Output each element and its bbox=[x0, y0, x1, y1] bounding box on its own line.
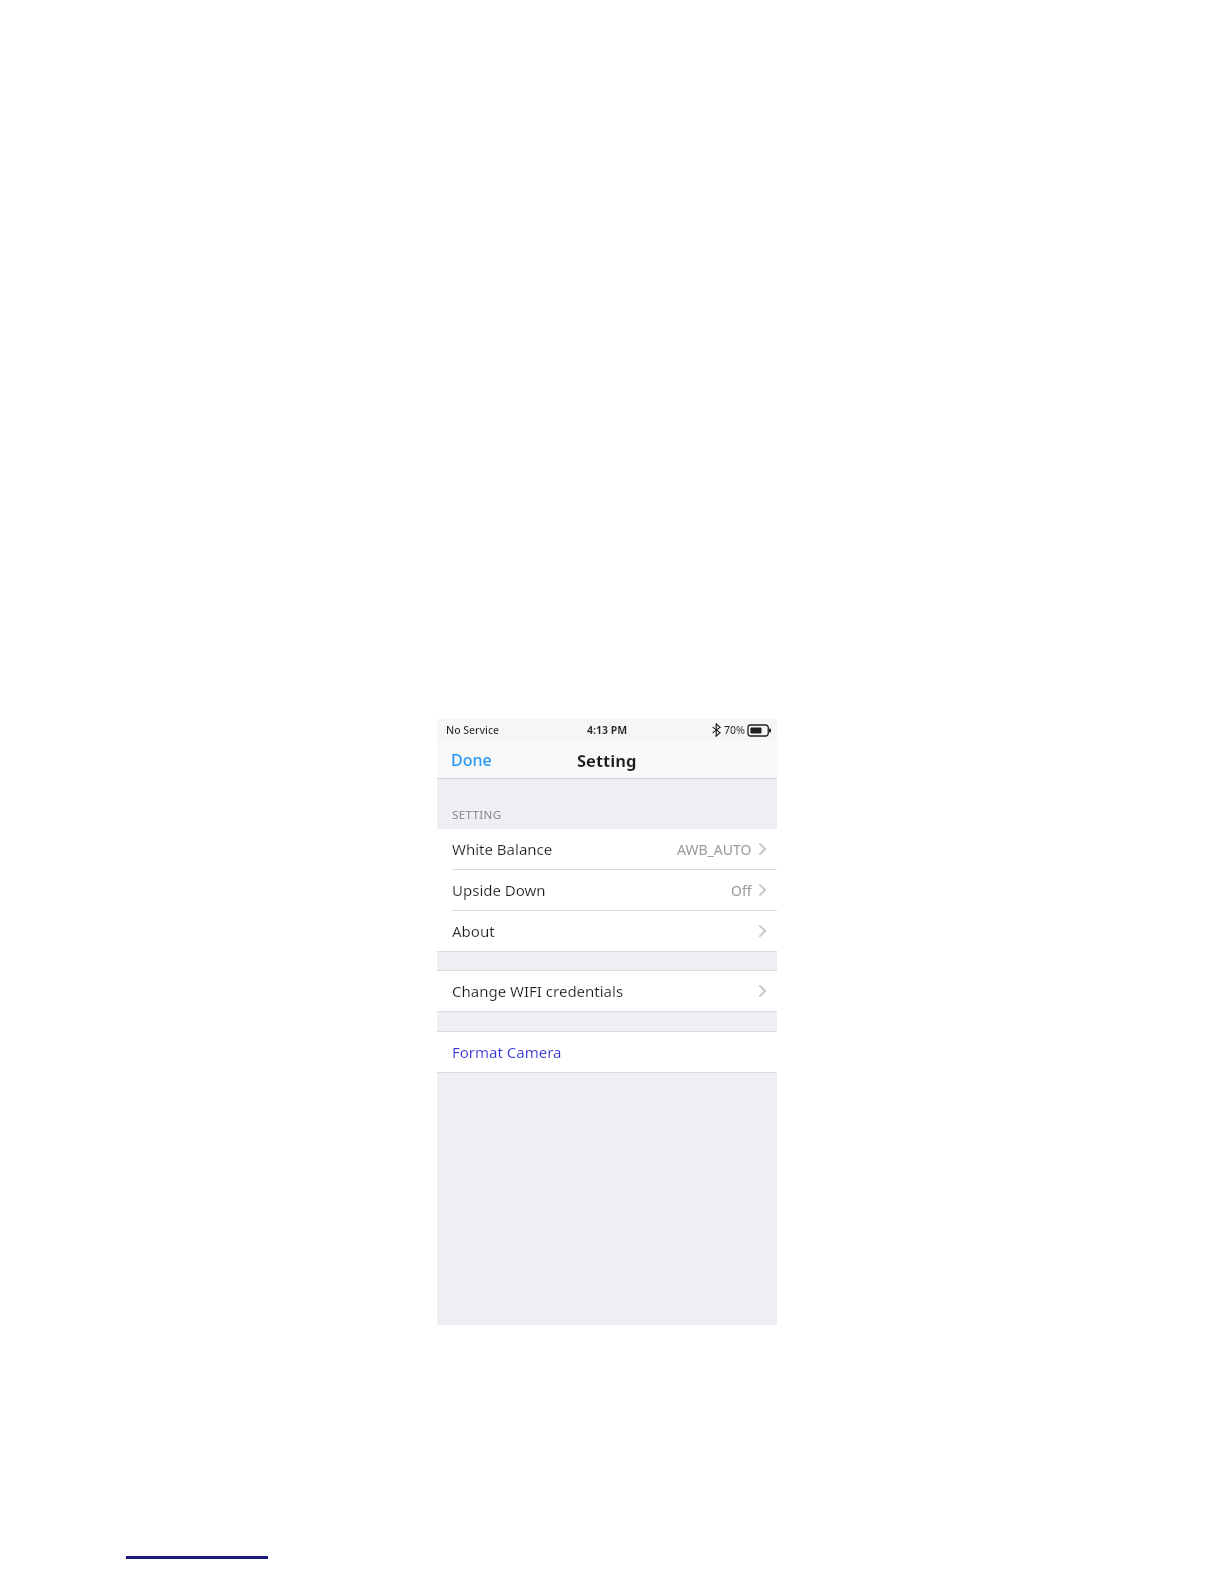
staticText: AWB_AUTO bbox=[677, 840, 752, 859]
staticText: 4:13 PM bbox=[587, 723, 628, 737]
button[interactable]: Format Camera bbox=[437, 1032, 777, 1072]
button[interactable]: Done bbox=[437, 743, 506, 777]
staticText: 70% bbox=[724, 723, 745, 737]
button[interactable]: About bbox=[437, 911, 777, 951]
staticText: No Service bbox=[446, 723, 500, 737]
button[interactable]: Upside Down bbox=[437, 870, 777, 910]
staticText: Off bbox=[731, 881, 752, 900]
staticText: Setting bbox=[577, 749, 637, 771]
button[interactable]: Change WIFI credentials bbox=[437, 971, 777, 1011]
staticText: Format Camera bbox=[452, 1042, 562, 1062]
staticText: White Balance bbox=[452, 839, 553, 859]
staticText: SETTING bbox=[452, 807, 502, 823]
button[interactable]: White Balance bbox=[437, 829, 777, 869]
staticText: Change WIFI credentials bbox=[452, 981, 624, 1001]
staticText: About bbox=[452, 921, 495, 941]
staticText: Done bbox=[451, 749, 492, 771]
staticText: Upside Down bbox=[452, 880, 546, 900]
